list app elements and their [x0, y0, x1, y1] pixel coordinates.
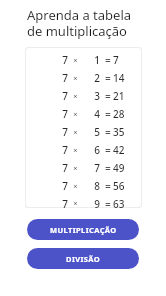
staticText: = [105, 197, 111, 208]
staticText: 7 [52, 107, 68, 121]
staticText: = [105, 53, 111, 67]
staticText: 21 [113, 89, 125, 103]
staticText: 7 [52, 197, 68, 208]
staticText: = [105, 161, 111, 175]
staticText: = [105, 143, 111, 157]
staticText: 7 [52, 125, 68, 139]
staticText: 3 [83, 89, 100, 103]
staticText: 7 [52, 71, 68, 85]
staticText: 28 [113, 107, 125, 121]
staticText: 42 [113, 143, 125, 157]
staticText: × [68, 55, 83, 65]
staticText: MULTIPLICAÇÃO [50, 225, 117, 235]
staticText: 1 [83, 53, 100, 67]
staticText: 7 [52, 161, 68, 175]
staticText: × [68, 163, 83, 173]
button[interactable]: MULTIPLICAÇÃO [27, 219, 139, 240]
staticText: 7 [52, 53, 68, 67]
staticText: × [68, 73, 83, 83]
button[interactable]: DIVISÃO [27, 248, 139, 269]
staticText: 63 [113, 197, 125, 208]
staticText: 7 [52, 143, 68, 157]
staticText: DIVISÃO [66, 254, 101, 264]
staticText: 5 [83, 125, 100, 139]
staticText: 14 [113, 71, 125, 85]
staticText: = [105, 107, 111, 121]
staticText: 2 [83, 71, 100, 85]
staticText: = [105, 71, 111, 85]
staticText: × [68, 127, 83, 137]
staticText: × [68, 181, 83, 191]
staticText: 7 [52, 89, 68, 103]
staticText: × [68, 145, 83, 155]
staticText: 8 [83, 179, 100, 193]
staticText: × [68, 91, 83, 101]
staticText: = [105, 89, 111, 103]
staticText: 7 [113, 53, 119, 67]
staticText: 7 [52, 179, 68, 193]
staticText: 56 [113, 179, 125, 193]
staticText: 35 [113, 125, 125, 139]
staticText: 9 [83, 197, 100, 208]
staticText: × [68, 198, 83, 208]
staticText: 7 [83, 161, 100, 175]
staticText: × [68, 109, 83, 119]
staticText: = [105, 179, 111, 193]
staticText: 6 [83, 143, 100, 157]
staticText: 4 [83, 107, 100, 121]
staticText: Aprenda a tabela de multiplicação [27, 6, 132, 39]
staticText: = [105, 125, 111, 139]
staticText: 49 [113, 161, 125, 175]
